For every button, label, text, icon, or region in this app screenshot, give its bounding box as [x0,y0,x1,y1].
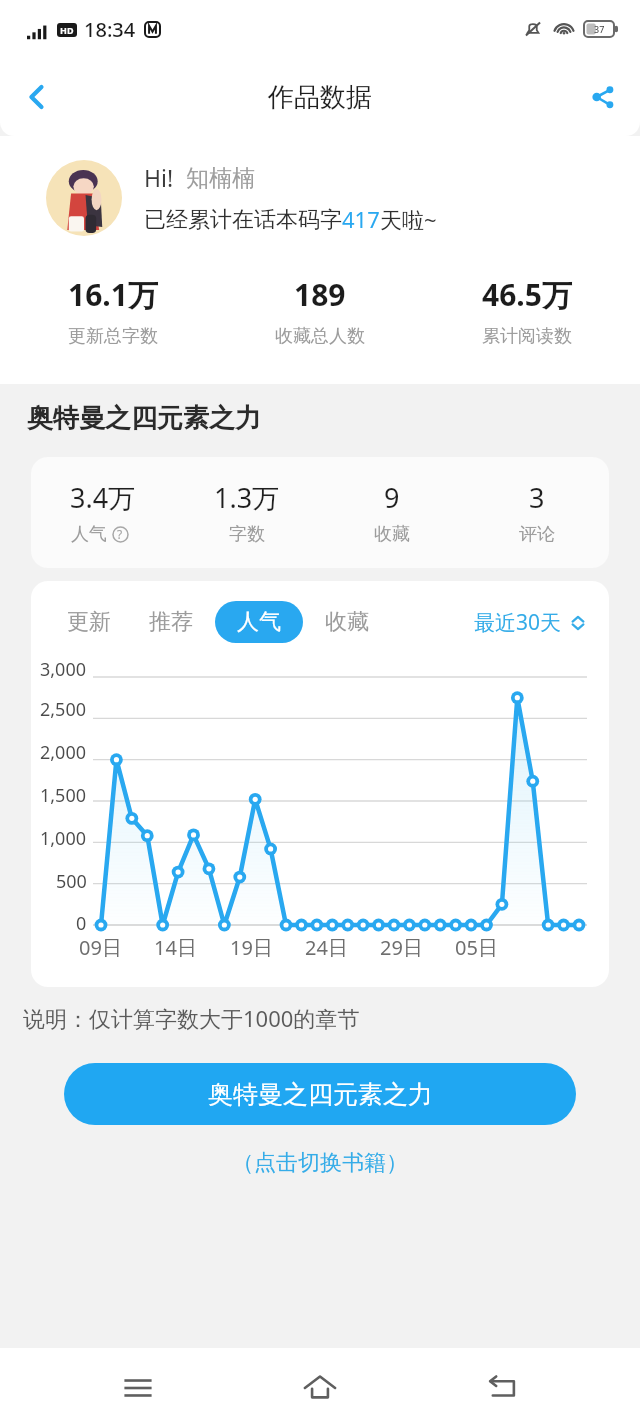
staticText: 人气 [237,608,281,636]
staticText: 417 [342,204,380,234]
button[interactable]: Back [0,58,74,136]
staticText: 字数 [229,523,265,546]
staticText: 1,500 [40,783,87,808]
staticText: Hi! [144,162,174,193]
staticText: 3.4万 [70,479,136,516]
button[interactable]: 16.1万 [10,274,216,348]
staticText: 05日 [455,934,498,961]
staticText: HD [60,24,74,36]
button[interactable]: 189 [216,274,423,348]
staticText: 已经累计在话本码字 [144,206,342,234]
staticText: 推荐 [149,608,193,636]
staticText: 2,500 [40,697,87,722]
staticText: 14日 [154,934,197,961]
button[interactable]: 更新 [61,601,117,643]
staticText: 2,000 [40,740,87,765]
button[interactable]: 最近30天 [474,608,587,637]
staticText: 更新总字数 [68,325,158,348]
staticText: 0 [76,911,87,933]
staticText: 18:34 [84,16,136,43]
staticText: 更新 [67,608,111,636]
button[interactable]: 46.5万 [423,274,630,348]
staticText: 09日 [79,934,122,961]
staticText: （点击切换书籍） [232,1149,408,1177]
staticText: ? [117,526,123,542]
button[interactable]: Back [458,1348,548,1428]
button[interactable]: 收藏 [319,601,375,643]
staticText: 29日 [380,934,423,961]
button[interactable]: 人气 [215,601,303,643]
button[interactable]: （点击切换书籍） [226,1143,414,1183]
staticText: 累计阅读数 [482,325,572,348]
staticText: 知楠楠 [186,164,255,193]
staticText: 作品数据 [268,81,372,114]
button[interactable]: 奥特曼之四元素之力 [64,1063,576,1125]
button[interactable]: 推荐 [143,601,199,643]
staticText: 奥特曼之四元素之力 [208,1079,433,1110]
staticText: 最近30天 [474,608,562,637]
staticText: 19日 [230,934,273,961]
button[interactable]: 3.4万 [31,479,609,546]
button[interactable]: Home [275,1348,365,1428]
button[interactable]: Recents [93,1348,183,1428]
staticText: 3 [529,479,545,516]
staticText: 37 [594,23,605,35]
staticText: 16.1万 [68,274,158,315]
staticText: 46.5万 [482,274,572,315]
staticText: 1.3万 [214,479,280,516]
staticText: 189 [294,274,346,315]
staticText: 人气 [71,523,107,546]
staticText: 收藏总人数 [275,325,365,348]
staticText: 3,000 [40,657,87,680]
staticText: 收藏 [374,523,410,546]
staticText: 收藏 [325,608,369,636]
staticText: 1,000 [40,826,87,851]
staticText: 说明：仅计算字数大于1000的章节 [23,1003,360,1033]
staticText: 9 [384,479,400,516]
staticText: 24日 [305,934,348,961]
button[interactable]: Share [566,58,640,136]
staticText: 奥特曼之四元素之力 [27,402,261,435]
staticText: 评论 [519,523,555,546]
staticText: 天啦~ [380,204,437,234]
staticText: 500 [56,869,87,894]
